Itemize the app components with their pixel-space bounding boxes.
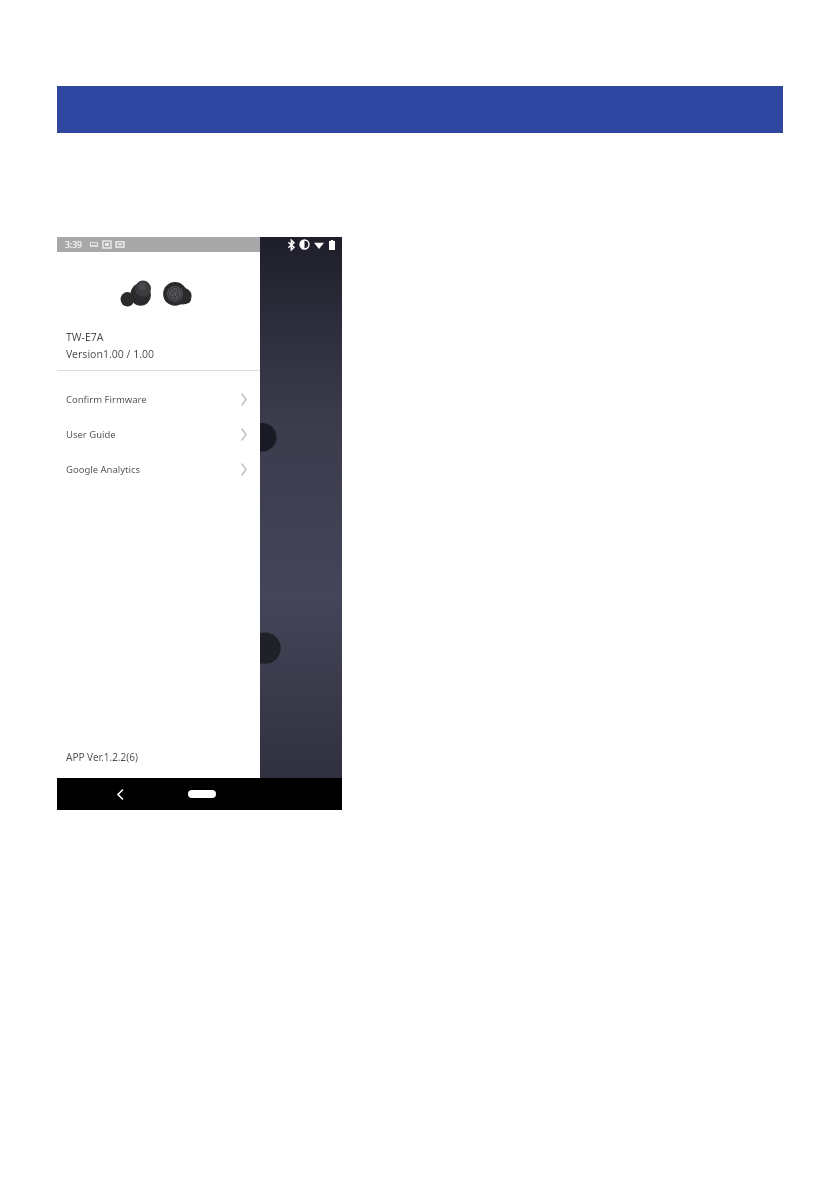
staticText: Version1.00 / 1.00 xyxy=(66,347,154,361)
staticText: Google Analytics xyxy=(66,463,141,476)
staticText: TW-E7A xyxy=(66,330,104,344)
button[interactable]: Google Analytics xyxy=(57,452,260,487)
button[interactable]: Confirm Firmware xyxy=(57,382,260,417)
button[interactable]: User Guide xyxy=(57,417,260,452)
staticText: Confirm Firmware xyxy=(66,393,147,406)
button[interactable]: Back xyxy=(107,781,133,807)
staticText: 3:39 xyxy=(65,239,82,251)
staticText: APP Ver.1.2.2(6) xyxy=(66,750,138,764)
button[interactable]: Home xyxy=(188,790,216,798)
staticText: User Guide xyxy=(66,428,116,441)
